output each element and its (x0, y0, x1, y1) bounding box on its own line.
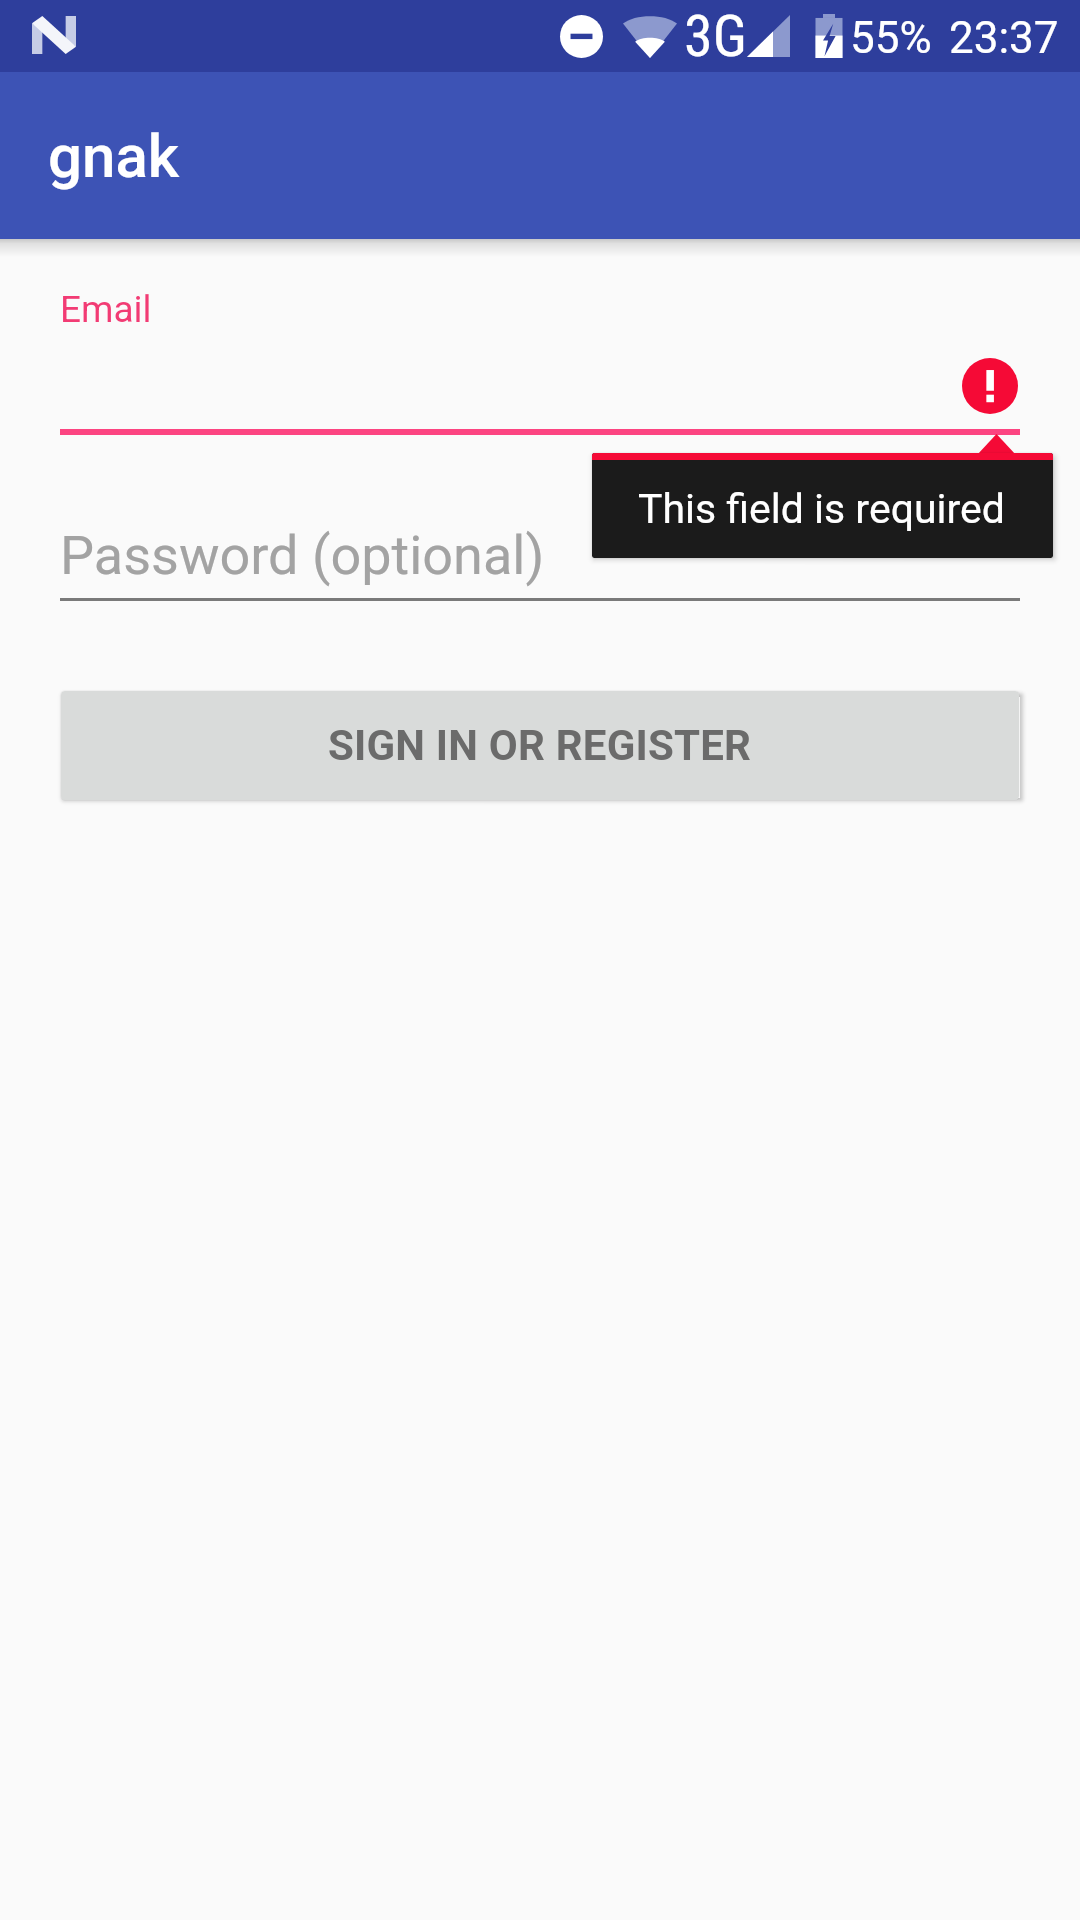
staticText: gnak (48, 121, 180, 191)
other: Wi-Fi (623, 15, 677, 58)
staticText: This field is required (638, 485, 1005, 533)
other: Battery 55 percent charging (814, 14, 844, 58)
button[interactable]: Error: this field is required (962, 358, 1018, 414)
staticText: 55% (850, 12, 932, 64)
button[interactable]: Password (optional) (60, 505, 1020, 601)
other: Cellular signal (747, 15, 790, 57)
staticText: Password (optional) (60, 524, 545, 587)
button[interactable]: Email (60, 278, 1020, 435)
staticText: SIGN IN OR REGISTER (328, 721, 752, 770)
staticText: 3G (684, 2, 747, 70)
other: Do not disturb (560, 15, 603, 58)
staticText: 23:37 (949, 12, 1059, 64)
staticText: Email (60, 288, 152, 331)
button[interactable]: SIGN IN OR REGISTER (61, 691, 1019, 800)
